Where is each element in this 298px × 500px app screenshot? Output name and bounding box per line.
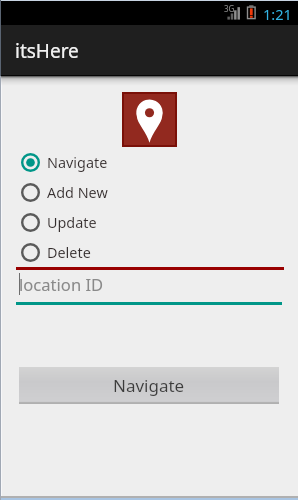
staticText: 1:21 — [263, 4, 292, 24]
staticText: 3G — [224, 3, 235, 14]
staticText: Add New — [47, 183, 108, 203]
staticText: Update — [47, 213, 97, 233]
staticText: itsHere — [15, 38, 79, 64]
button[interactable]: Navigate — [0, 147, 298, 177]
staticText: Delete — [47, 243, 91, 263]
button[interactable]: Navigate — [19, 367, 279, 404]
button[interactable]: location ID — [16, 273, 281, 295]
button[interactable]: Add New — [0, 177, 298, 207]
staticText: Navigate — [113, 374, 185, 397]
staticText: location ID — [19, 273, 104, 295]
staticText: Navigate — [47, 153, 108, 173]
button[interactable]: Update — [0, 207, 298, 237]
button[interactable]: Delete — [0, 237, 298, 267]
button[interactable]: App icon — [124, 94, 175, 145]
